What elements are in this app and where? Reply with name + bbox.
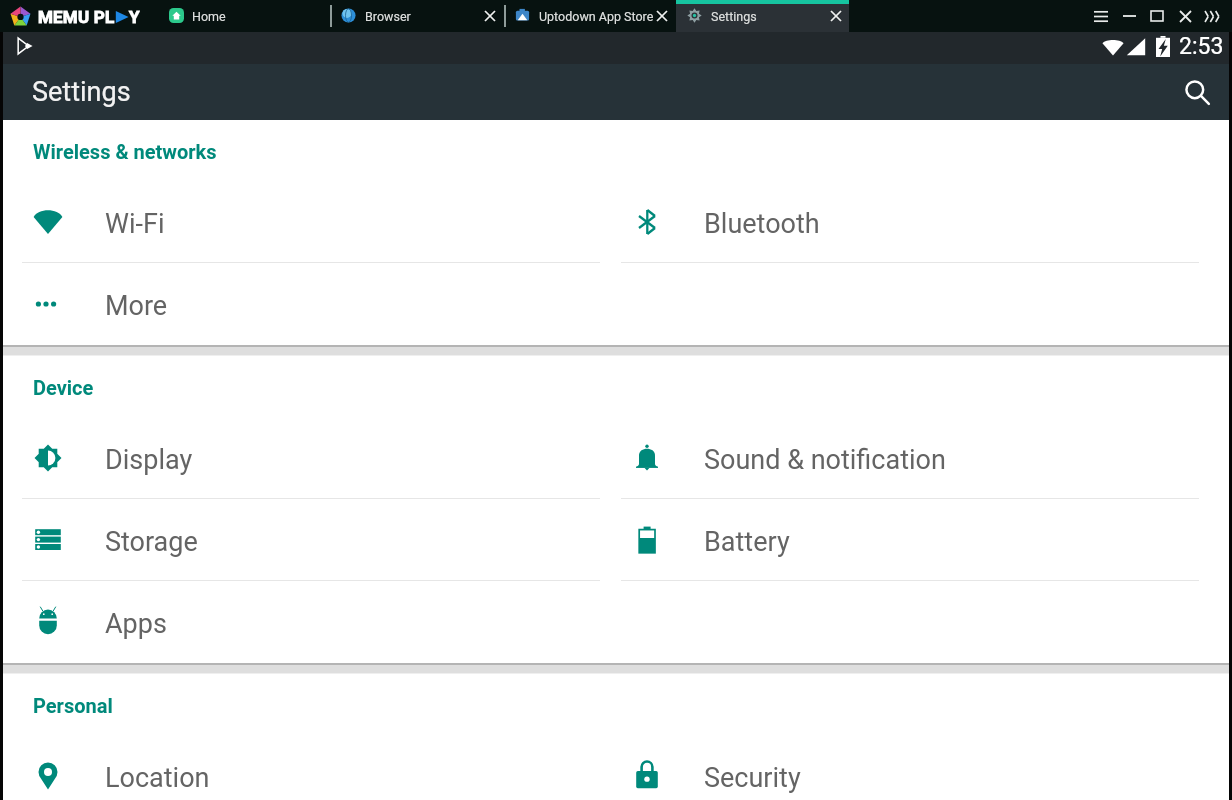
staticText: Security bbox=[704, 762, 801, 794]
button[interactable]: Close Uptodown App Store bbox=[650, 0, 674, 32]
staticText: Home bbox=[192, 9, 226, 24]
button[interactable]: Browser bbox=[332, 0, 504, 32]
staticText: Sound & notification bbox=[704, 444, 946, 476]
button[interactable]: Uptodown App Store bbox=[506, 0, 676, 32]
button[interactable]: Storage bbox=[3, 499, 602, 581]
button[interactable]: Menu bbox=[1087, 0, 1115, 32]
staticText: Wireless & networks bbox=[33, 140, 217, 163]
staticText: More bbox=[105, 290, 168, 322]
button[interactable]: Security bbox=[602, 735, 1201, 800]
staticText: MEMU PL bbox=[38, 7, 115, 27]
staticText: 2:53 bbox=[1179, 33, 1224, 60]
button[interactable]: Display bbox=[3, 417, 602, 499]
staticText: Battery bbox=[704, 526, 790, 558]
staticText: Browser bbox=[365, 9, 411, 24]
button[interactable]: Location bbox=[3, 735, 602, 800]
button[interactable]: Close Browser bbox=[478, 0, 502, 32]
staticText: Y bbox=[129, 7, 140, 27]
button[interactable]: Bluetooth bbox=[602, 181, 1201, 263]
button[interactable]: Close Settings bbox=[824, 0, 848, 32]
staticText: Settings bbox=[711, 9, 757, 24]
button[interactable]: Battery bbox=[602, 499, 1201, 581]
button[interactable]: Minimize bbox=[1115, 0, 1143, 32]
button[interactable]: Wi-Fi bbox=[3, 181, 602, 263]
button[interactable]: Close bbox=[1171, 0, 1199, 32]
button[interactable]: Settings bbox=[676, 0, 849, 32]
button[interactable]: Apps bbox=[3, 581, 602, 663]
staticText: Display bbox=[105, 444, 193, 476]
staticText: Wi-Fi bbox=[105, 208, 165, 240]
button[interactable]: Search bbox=[1169, 64, 1225, 120]
staticText: Device bbox=[33, 376, 94, 399]
button[interactable]: More windows bbox=[1199, 0, 1227, 32]
button[interactable]: More bbox=[3, 263, 602, 345]
staticText: Personal bbox=[33, 694, 113, 717]
staticText: Storage bbox=[105, 526, 198, 558]
staticText: Settings bbox=[32, 76, 131, 108]
staticText: Bluetooth bbox=[704, 208, 820, 240]
staticText: Location bbox=[105, 762, 210, 794]
staticText: Apps bbox=[105, 608, 167, 640]
staticText: Uptodown App Store bbox=[539, 9, 654, 24]
button[interactable]: Home bbox=[160, 0, 330, 32]
button[interactable]: Sound & notification bbox=[602, 417, 1201, 499]
button[interactable]: Maximize bbox=[1143, 0, 1171, 32]
